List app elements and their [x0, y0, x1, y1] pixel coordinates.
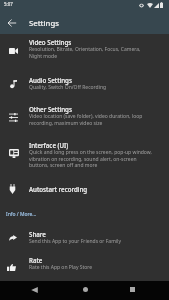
staticText: Quick and long press on the screen, pop-…: [29, 149, 153, 168]
button[interactable]: Rate: [0, 252, 169, 281]
staticText: Autostart recording: [29, 185, 88, 193]
staticText: Resolution, Bitrate, Orientation, Focus,…: [29, 46, 153, 59]
button[interactable]: Share: [0, 226, 169, 252]
button[interactable]: Navigate up: [0, 12, 24, 34]
button[interactable]: Autostart recording: [0, 181, 169, 207]
button[interactable]: Audio Settings: [0, 72, 169, 100]
staticText: Video location (save folder), video dura…: [29, 113, 153, 126]
button[interactable]: Back: [15, 281, 53, 300]
staticText: Info / More...: [6, 211, 37, 218]
staticText: Other Settings: [29, 105, 72, 113]
button[interactable]: Other Settings: [0, 100, 169, 137]
staticText: Audio Settings: [29, 76, 72, 84]
staticText: Rate this App on Play Store: [29, 264, 93, 271]
button[interactable]: Recent apps: [113, 281, 151, 300]
staticText: Rate: [29, 256, 43, 264]
staticText: Share: [29, 230, 46, 238]
staticText: Interface (UI): [29, 141, 69, 149]
staticText: 5:07: [4, 1, 13, 7]
staticText: Settings: [29, 18, 59, 28]
button[interactable]: Home: [66, 281, 104, 300]
button[interactable]: Info / More...: [0, 207, 169, 226]
other: Status icon: [139, 3, 144, 8]
staticText: Video Settings: [29, 38, 72, 46]
button[interactable]: Interface (UI): [0, 137, 169, 181]
staticText: Send this App to your Friends or Family: [29, 238, 121, 245]
button[interactable]: Video Settings: [0, 34, 169, 72]
staticText: Quality, Switch On/Off Recording: [29, 84, 107, 91]
